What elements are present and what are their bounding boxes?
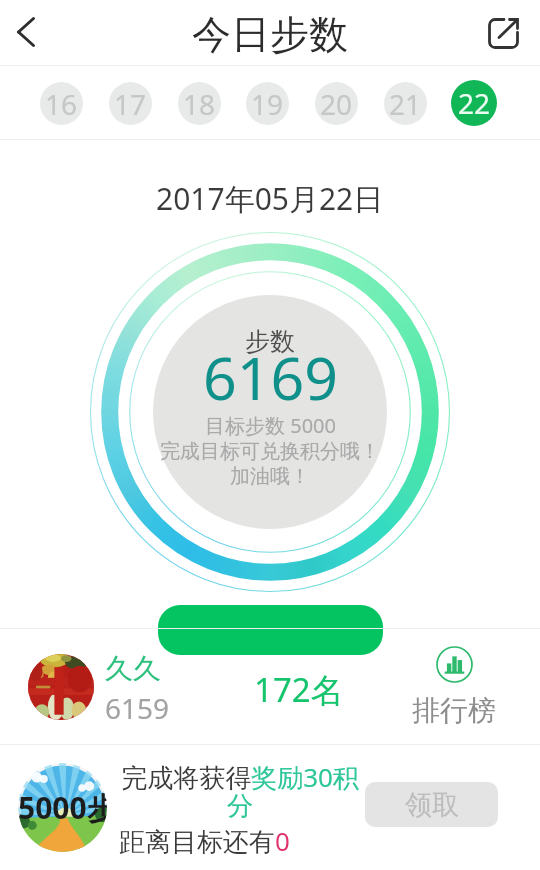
button[interactable]: 22	[451, 80, 497, 126]
button[interactable]: 21	[384, 82, 427, 125]
button[interactable]: 17	[109, 82, 152, 125]
staticText: 距离目标还有0	[119, 823, 290, 859]
staticText: 久久	[105, 651, 161, 686]
button[interactable]: 19	[246, 82, 289, 125]
staticText: 加油哦！	[230, 464, 310, 489]
button[interactable]: 20	[315, 82, 358, 125]
staticText: 22	[458, 84, 491, 122]
staticText: 6159	[105, 689, 170, 727]
staticText: 目标步数 5000	[205, 412, 336, 439]
staticText: 20	[320, 85, 353, 123]
button[interactable]: Back	[0, 0, 53, 66]
staticText: 完成将获得奖励30积分	[119, 759, 361, 823]
button[interactable]: 16	[40, 82, 83, 125]
button[interactable]: 18	[178, 82, 221, 125]
staticText: 今日步数	[192, 10, 348, 59]
staticText: 21	[389, 85, 422, 123]
button[interactable]: 领取	[365, 782, 498, 827]
staticText: 2017年05月22日	[156, 178, 384, 219]
button[interactable]: 久久	[0, 629, 540, 745]
staticText: 18	[183, 85, 216, 123]
staticText: 完成目标可兑换积分哦！	[160, 439, 380, 464]
staticText: 领取	[405, 788, 459, 822]
button[interactable]: Share	[469, 0, 538, 66]
button[interactable]	[158, 605, 383, 655]
staticText: 5000步	[18, 787, 107, 828]
staticText: 172名	[254, 667, 344, 712]
staticText: 16	[45, 85, 78, 123]
staticText: 17	[114, 85, 147, 123]
staticText: 6169	[203, 337, 338, 417]
staticText: 步数	[245, 326, 295, 357]
staticText: 排行榜	[412, 693, 496, 728]
staticText: 19	[251, 85, 284, 123]
